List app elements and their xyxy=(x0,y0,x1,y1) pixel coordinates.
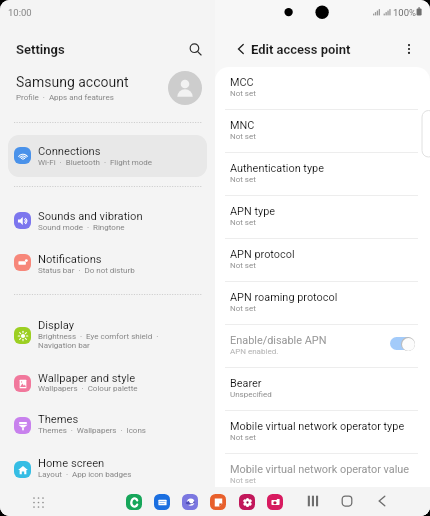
button[interactable]: Mobile virtual network operator value xyxy=(215,454,430,497)
staticText: Themes xyxy=(38,413,79,426)
button[interactable]: Phone xyxy=(126,494,142,510)
staticText: Connections xyxy=(38,145,101,158)
button[interactable]: More options xyxy=(398,38,420,60)
staticText: Not set xyxy=(230,433,256,442)
staticText: Display xyxy=(38,319,75,332)
staticText: Themes · Wallpapers · Icons xyxy=(38,426,146,435)
button[interactable]: Back xyxy=(371,490,393,512)
staticText: MNC xyxy=(230,119,255,132)
staticText: 100% xyxy=(393,7,416,18)
staticText: Brightness · Eye comfort shield · Naviga… xyxy=(38,332,159,350)
staticText: APN type xyxy=(230,205,276,218)
staticText: Not set xyxy=(230,175,256,184)
staticText: Sounds and vibration xyxy=(38,210,143,223)
staticText: APN protocol xyxy=(230,248,295,261)
button[interactable]: Authentication type xyxy=(215,153,430,196)
button[interactable]: Galaxy Store xyxy=(239,494,255,510)
button[interactable] xyxy=(8,405,207,447)
staticText: Not set xyxy=(230,476,256,485)
staticText: Edit access point xyxy=(251,42,351,57)
staticText: Wallpapers · Colour palette xyxy=(38,384,138,393)
staticText: Mobile virtual network operator value xyxy=(230,463,410,476)
button[interactable] xyxy=(8,312,207,358)
button[interactable]: All apps xyxy=(30,494,46,510)
button[interactable] xyxy=(8,363,207,405)
button[interactable]: Camera xyxy=(267,494,283,510)
staticText: Mobile virtual network operator type xyxy=(230,420,405,433)
button[interactable]: Notes xyxy=(210,494,226,510)
staticText: Not set xyxy=(230,304,256,313)
button[interactable] xyxy=(8,449,207,491)
button[interactable]: Recents xyxy=(302,490,324,512)
staticText: Wallpaper and style xyxy=(38,372,136,385)
button[interactable] xyxy=(8,200,207,242)
button[interactable]: Enable/disable APN xyxy=(390,337,413,350)
staticText: Home screen xyxy=(38,457,105,470)
button[interactable]: Internet xyxy=(182,494,198,510)
staticText: Settings xyxy=(16,42,65,57)
staticText: APN enabled. xyxy=(230,347,279,356)
staticText: Not set xyxy=(230,261,256,270)
staticText: Unspecified xyxy=(230,390,272,399)
button[interactable]: MNC xyxy=(215,110,430,153)
button[interactable]: Back xyxy=(230,38,252,60)
staticText: 10:00 xyxy=(8,7,32,18)
staticText: Wi-Fi · Bluetooth · Flight mode xyxy=(38,158,153,167)
button[interactable]: Messages xyxy=(154,494,170,510)
staticText: Not set xyxy=(230,132,256,141)
button[interactable]: Mobile virtual network operator type xyxy=(215,411,430,454)
staticText: Profile · Apps and features xyxy=(16,93,114,102)
staticText: Sound mode · Ringtone xyxy=(38,223,125,232)
button[interactable]: Enable/disable APN xyxy=(215,325,430,368)
button[interactable] xyxy=(8,242,207,284)
button[interactable]: Home xyxy=(336,490,358,512)
staticText: Authentication type xyxy=(230,162,324,175)
staticText: Not set xyxy=(230,89,256,98)
staticText: Not set xyxy=(230,218,256,227)
button[interactable]: Bearer xyxy=(215,368,430,411)
button[interactable]: APN roaming protocol xyxy=(215,282,430,325)
button[interactable]: Search xyxy=(184,38,206,60)
button[interactable]: Samsung account xyxy=(0,66,215,110)
staticText: MCC xyxy=(230,76,254,89)
button[interactable]: MCC xyxy=(215,67,430,110)
button[interactable]: APN type xyxy=(215,196,430,239)
staticText: Samsung account xyxy=(16,74,129,90)
button[interactable]: APN protocol xyxy=(215,239,430,282)
staticText: Status bar · Do not disturb xyxy=(38,266,135,275)
staticText: Notifications xyxy=(38,253,102,266)
staticText: APN roaming protocol xyxy=(230,291,338,304)
staticText: Bearer xyxy=(230,377,262,390)
staticText: Layout · App icon badges xyxy=(38,470,132,479)
staticText: Enable/disable APN xyxy=(230,334,327,347)
button[interactable] xyxy=(8,135,207,177)
